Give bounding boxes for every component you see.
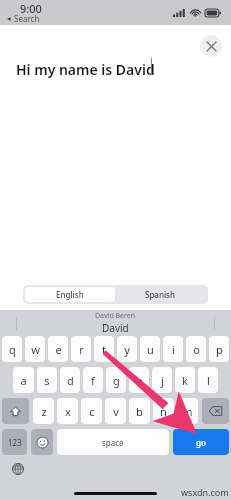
- button[interactable]: i: [163, 336, 183, 362]
- button[interactable]: f: [83, 367, 103, 393]
- button[interactable]: w: [25, 336, 45, 362]
- staticText: c: [89, 404, 95, 419]
- staticText: w: [31, 342, 40, 357]
- button[interactable]: Close: [200, 35, 222, 57]
- button[interactable]: q: [2, 336, 22, 362]
- button[interactable]: l: [198, 367, 218, 393]
- staticText: b: [136, 404, 143, 419]
- staticText: go: [196, 437, 206, 448]
- button[interactable]: v: [105, 398, 126, 424]
- button[interactable]: u: [140, 336, 160, 362]
- button[interactable]: Spanish: [115, 287, 206, 302]
- staticText: v: [113, 404, 119, 419]
- staticText: Spanish: [145, 289, 176, 300]
- staticText: h: [136, 373, 143, 388]
- button[interactable]: k: [175, 367, 195, 393]
- staticText: 123: [8, 437, 22, 448]
- staticText: f: [91, 373, 95, 388]
- staticText: y: [124, 342, 130, 357]
- button[interactable]: n: [153, 398, 174, 424]
- staticText: q: [9, 342, 16, 357]
- button[interactable]: z: [33, 398, 54, 424]
- staticText: d: [67, 373, 74, 388]
- staticText: k: [182, 373, 188, 388]
- staticText: r: [79, 342, 84, 357]
- staticText: t: [102, 342, 106, 357]
- button[interactable]: b: [129, 398, 150, 424]
- button[interactable]: English: [25, 287, 115, 302]
- staticText: English: [56, 289, 84, 300]
- button[interactable]: x: [57, 398, 78, 424]
- staticText: 9:00: [20, 1, 42, 16]
- button[interactable]: h: [129, 367, 149, 393]
- staticText: n: [160, 404, 167, 419]
- staticText: g: [113, 373, 120, 388]
- button[interactable]: r: [71, 336, 91, 362]
- staticText: o: [193, 342, 200, 357]
- button[interactable]: t: [94, 336, 114, 362]
- button[interactable]: y: [117, 336, 137, 362]
- button[interactable]: c: [81, 398, 102, 424]
- staticText: wsxdn.com: [181, 486, 229, 498]
- button[interactable]: 123: [2, 429, 27, 455]
- staticText: i: [172, 342, 175, 357]
- button[interactable]: e: [48, 336, 68, 362]
- button[interactable]: Backspace: [202, 398, 229, 424]
- staticText: z: [41, 404, 47, 419]
- staticText: e: [55, 342, 62, 357]
- staticText: a: [20, 373, 27, 388]
- button[interactable]: m: [177, 398, 198, 424]
- button[interactable]: Emoji: [31, 429, 53, 455]
- staticText: space: [102, 437, 124, 448]
- button[interactable]: Shift: [2, 398, 29, 424]
- button[interactable]: g: [106, 367, 126, 393]
- staticText: p: [216, 342, 223, 357]
- staticText: David: [102, 321, 129, 335]
- button[interactable]: go: [173, 429, 229, 455]
- staticText: u: [147, 342, 154, 357]
- button[interactable]: a: [13, 367, 34, 393]
- staticText: x: [65, 404, 71, 419]
- button[interactable]: Change keyboard: [11, 462, 25, 476]
- staticText: j: [161, 373, 164, 388]
- staticText: m: [182, 404, 193, 419]
- button[interactable]: s: [37, 367, 57, 393]
- staticText: Search: [14, 13, 40, 24]
- button[interactable]: d: [60, 367, 80, 393]
- button[interactable]: p: [209, 336, 229, 362]
- button[interactable]: o: [186, 336, 206, 362]
- staticText: s: [44, 373, 50, 388]
- button[interactable]: space: [57, 429, 169, 455]
- staticText: Hi my name is David: [16, 60, 155, 79]
- button[interactable]: j: [152, 367, 172, 393]
- staticText: David Beren: [95, 311, 136, 321]
- staticText: l: [207, 373, 210, 388]
